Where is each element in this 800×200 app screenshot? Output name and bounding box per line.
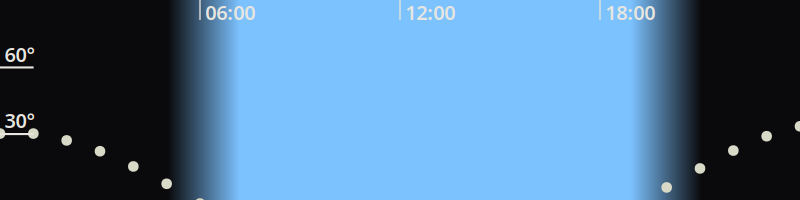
staticText: 60° — [4, 41, 35, 67]
staticText: 12:00 — [405, 0, 455, 25]
staticText: 06:00 — [205, 0, 255, 25]
staticText: 30° — [4, 107, 35, 134]
staticText: 18:00 — [605, 0, 655, 25]
